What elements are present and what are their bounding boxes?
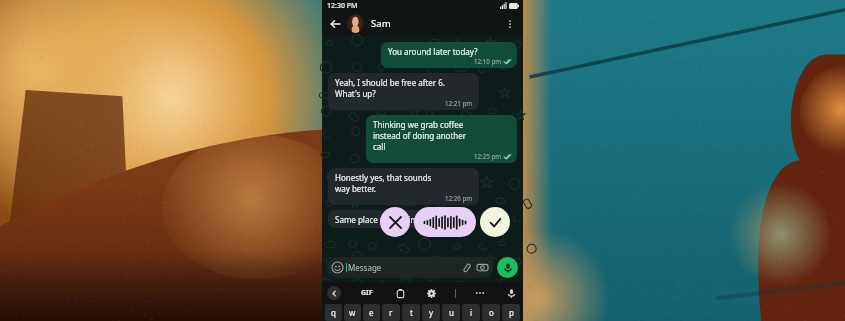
staticText: 12:30 PM bbox=[327, 1, 358, 11]
button[interactable]: You around later today? bbox=[381, 42, 517, 68]
button[interactable]: Cancel bbox=[380, 207, 410, 237]
button[interactable]: Honestly yes, that sounds way better. bbox=[328, 168, 479, 205]
staticText: r bbox=[389, 307, 393, 318]
button[interactable]: q bbox=[325, 304, 342, 321]
button[interactable]: GIF bbox=[359, 286, 375, 300]
staticText: p bbox=[509, 307, 514, 318]
button[interactable]: Settings bbox=[424, 286, 438, 300]
staticText: e bbox=[369, 307, 374, 318]
staticText: Honestly yes, that sounds way better. bbox=[335, 172, 432, 194]
staticText: GIF bbox=[361, 288, 373, 298]
button[interactable]: Sam bbox=[371, 17, 391, 30]
button[interactable]: Yeah, I should be free after 6. What's u… bbox=[328, 73, 479, 110]
button[interactable]: p bbox=[502, 304, 520, 321]
button[interactable]: e bbox=[363, 304, 380, 321]
button[interactable]: y bbox=[422, 304, 440, 321]
button[interactable]: w bbox=[344, 304, 361, 321]
button[interactable]: u bbox=[442, 304, 460, 321]
staticText: o bbox=[489, 307, 494, 318]
staticText: w bbox=[349, 307, 356, 318]
staticText: t bbox=[410, 307, 413, 318]
button[interactable]: t bbox=[402, 304, 420, 321]
button[interactable]: Voice recording bbox=[414, 207, 476, 237]
staticText: 12:10 pm bbox=[474, 57, 502, 65]
staticText: q bbox=[331, 307, 336, 318]
staticText: y bbox=[429, 307, 434, 318]
staticText: 12:25 pm bbox=[474, 152, 502, 160]
other: Attach bbox=[462, 263, 472, 273]
other: Camera bbox=[477, 262, 488, 273]
button[interactable] bbox=[346, 14, 365, 33]
button[interactable]: Send bbox=[480, 207, 510, 237]
button[interactable]: i bbox=[462, 304, 480, 321]
button[interactable]: Message bbox=[327, 257, 493, 278]
button[interactable]: Back bbox=[327, 16, 343, 32]
staticText: 12:26 pm bbox=[445, 194, 473, 202]
button[interactable]: Voice input bbox=[504, 286, 518, 300]
staticText: i bbox=[470, 307, 473, 318]
button[interactable]: Clipboard bbox=[393, 286, 407, 300]
staticText: You around later today? bbox=[388, 46, 478, 57]
button[interactable]: Same place as last time? bbox=[328, 210, 460, 228]
staticText: Thinking we grab coffee instead of doing… bbox=[373, 119, 467, 152]
button[interactable]: Thinking we grab coffee instead of doing… bbox=[366, 115, 517, 163]
button[interactable]: Expand bbox=[327, 286, 341, 300]
button[interactable]: o bbox=[482, 304, 500, 321]
staticText: u bbox=[449, 307, 454, 318]
staticText: Message bbox=[348, 262, 382, 273]
staticText: Yeah, I should be free after 6. What's u… bbox=[335, 77, 445, 99]
button[interactable]: More bbox=[473, 286, 487, 300]
staticText: Same place as last time? bbox=[335, 214, 427, 225]
button[interactable]: More options bbox=[502, 16, 518, 32]
staticText: 12:21 pm bbox=[445, 99, 473, 107]
button[interactable]: r bbox=[382, 304, 400, 321]
button[interactable]: Record voice message bbox=[497, 257, 518, 278]
